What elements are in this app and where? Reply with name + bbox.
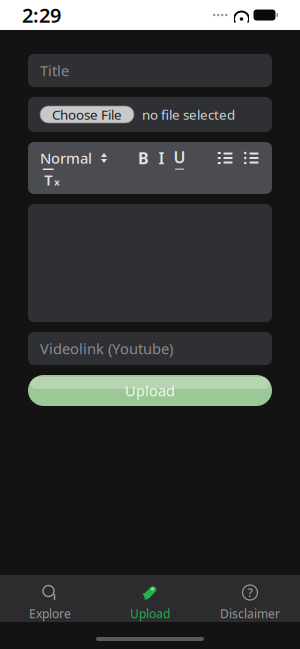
button[interactable]: Upload: [28, 375, 272, 406]
button[interactable]: Normal: [40, 148, 107, 168]
staticText: I: [158, 147, 164, 169]
button[interactable]: Title: [28, 54, 272, 87]
button[interactable]: Clear formatting: [40, 170, 62, 188]
button[interactable]: Italic: [152, 149, 170, 167]
button[interactable]: Underline: [170, 149, 188, 167]
button[interactable]: Bold: [134, 149, 152, 167]
staticText: 2:29: [22, 2, 61, 28]
staticText: no file selected: [142, 106, 235, 123]
button[interactable]: Videolink (Youtube): [28, 332, 272, 365]
staticText: Choose File: [52, 106, 122, 123]
staticText: Videolink (Youtube): [40, 339, 173, 358]
button[interactable]: ?: [200, 582, 300, 622]
staticText: Explore: [29, 605, 71, 621]
staticText: B: [138, 147, 149, 169]
staticText: U: [173, 146, 185, 168]
staticText: x: [54, 176, 59, 188]
staticText: Upload: [130, 605, 170, 621]
staticText: ?: [247, 585, 252, 600]
staticText: Title: [40, 61, 69, 80]
button[interactable]: Bullet list: [242, 150, 260, 166]
staticText: Normal: [40, 148, 92, 168]
staticText: T: [44, 170, 52, 189]
button[interactable]: Upload: [100, 582, 200, 622]
staticText: Disclaimer: [220, 605, 280, 621]
button[interactable]: Choose File: [40, 106, 134, 123]
staticText: Upload: [125, 381, 175, 400]
button[interactable]: Ordered list: [216, 150, 234, 166]
button[interactable]: Explore: [0, 582, 100, 622]
